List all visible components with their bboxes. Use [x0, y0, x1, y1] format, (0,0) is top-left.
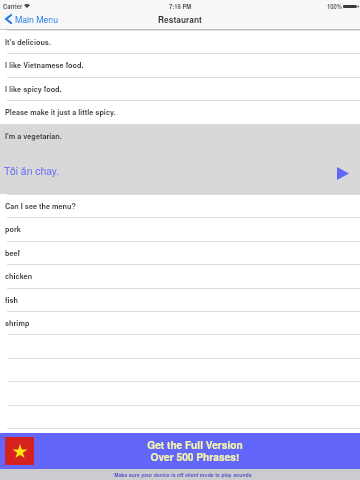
button[interactable]: I like spicy food.	[0, 77, 360, 100]
staticText: fish	[5, 295, 18, 305]
button[interactable]: Get the Full Version	[0, 433, 360, 469]
button[interactable]: Can I see the menu?	[0, 194, 360, 217]
staticText: Get the Full Version	[30, 438, 360, 453]
staticText: Over 500 Phrases!	[30, 450, 360, 465]
staticText: It's delicious.	[5, 37, 51, 47]
staticText: Carrier	[3, 2, 23, 10]
staticText: shrimp	[5, 318, 30, 328]
staticText: 7:18 PM	[169, 2, 192, 10]
button[interactable]: Please make it just a little spicy.	[0, 100, 360, 124]
button[interactable]: chicken	[0, 264, 360, 288]
button[interactable]: beef	[0, 241, 360, 264]
button[interactable]: I like Vietnamese food.	[0, 53, 360, 77]
staticText: I like spicy food.	[5, 84, 62, 94]
button[interactable]: fish	[0, 288, 360, 311]
staticText: Please make it just a little spicy.	[5, 107, 116, 117]
button[interactable]: pork	[0, 217, 360, 241]
button[interactable]: shrimp	[0, 311, 360, 334]
button[interactable]: I'm a vegetarian.	[0, 124, 360, 194]
button[interactable]: It's delicious.	[0, 30, 360, 53]
staticText: chicken	[5, 271, 33, 281]
button[interactable]: Play pronunciation	[332, 162, 354, 184]
staticText: Main Menu	[15, 13, 58, 25]
staticText: Restaurant	[158, 14, 202, 26]
staticText: Make sure your device is off silent mode…	[114, 471, 252, 478]
staticText: Tôi ăn chay.	[4, 163, 60, 178]
staticText: I'm a vegetarian.	[5, 131, 62, 141]
staticText: 100%	[327, 2, 343, 10]
staticText: Can I see the menu?	[5, 201, 76, 211]
button[interactable]: Main Menu	[0, 11, 66, 27]
staticText: beef	[5, 248, 21, 258]
staticText: I like Vietnamese food.	[5, 60, 84, 70]
staticText: pork	[5, 224, 21, 234]
